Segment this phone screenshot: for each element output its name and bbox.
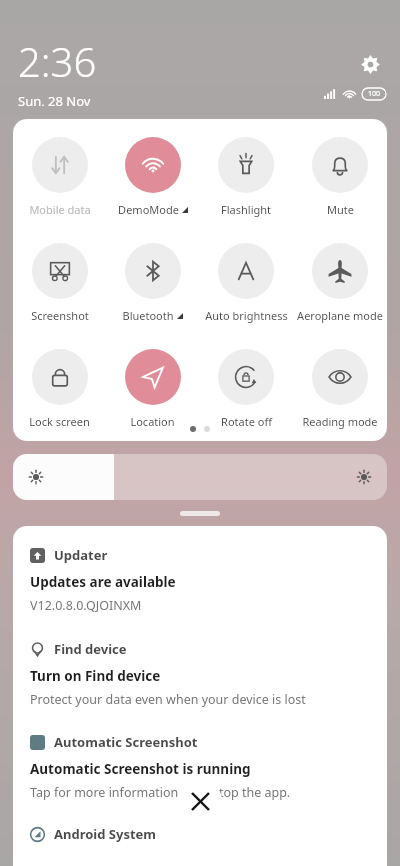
staticText: Android System: [54, 825, 157, 843]
staticText: Automatic Screenshot is running: [30, 760, 251, 778]
button[interactable]: Find device: [30, 640, 370, 658]
staticText: Mobile data: [29, 202, 91, 217]
staticText: DemoMode: [118, 202, 179, 217]
button[interactable]: Settings: [354, 48, 386, 80]
staticText: V12.0.8.0.QJOINXM: [30, 597, 142, 614]
staticText: Protect your data even when your device …: [30, 691, 306, 708]
button[interactable]: Reading mode: [293, 347, 387, 431]
button[interactable]: Auto brightness: [199, 241, 293, 325]
button[interactable]: Updater: [30, 546, 370, 564]
staticText: Tap for more information or to stop the …: [30, 784, 291, 801]
button[interactable]: Location: [106, 347, 199, 431]
staticText: Automatic Screenshot: [54, 733, 198, 751]
staticText: Sun, 28 Nov: [18, 92, 91, 106]
button[interactable]: DemoMode: [106, 135, 199, 219]
button[interactable]: Screenshot: [13, 241, 106, 325]
button[interactable]: Aeroplane mode: [293, 241, 387, 325]
staticText: 100: [368, 89, 381, 99]
button[interactable]: Bluetooth: [106, 241, 199, 325]
staticText: Location: [130, 414, 175, 429]
staticText: Turn on Find device: [30, 667, 161, 685]
button[interactable]: Flashlight: [199, 135, 293, 219]
staticText: Updater: [54, 546, 108, 564]
staticText: Updates are available: [30, 573, 176, 591]
button[interactable]: Lock screen: [13, 347, 106, 431]
staticText: Find device: [54, 640, 127, 658]
staticText: Bluetooth: [122, 308, 174, 323]
staticText: Flashlight: [221, 202, 271, 217]
staticText: Auto brightness: [205, 308, 288, 323]
staticText: Rotate off: [221, 414, 272, 429]
staticText: Mute: [327, 202, 354, 217]
button[interactable]: Close: [178, 779, 222, 823]
staticText: 2:36: [18, 34, 97, 88]
staticText: Lock screen: [29, 414, 90, 429]
button[interactable]: Automatic Screenshot: [30, 733, 370, 751]
button[interactable]: Brightness: [13, 454, 387, 500]
button[interactable]: Mute: [293, 135, 387, 219]
button[interactable]: Android System: [30, 825, 370, 843]
staticText: Screenshot: [31, 308, 89, 323]
button[interactable]: Mobile data: [13, 135, 106, 219]
staticText: Aeroplane mode: [297, 308, 383, 323]
button[interactable]: Rotate off: [199, 347, 293, 431]
staticText: Reading mode: [302, 414, 378, 429]
